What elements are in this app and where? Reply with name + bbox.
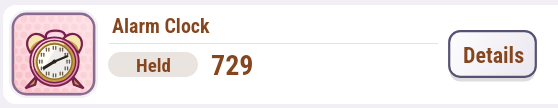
staticText: Held xyxy=(136,54,171,76)
other: Alarm Clock icon xyxy=(9,10,98,98)
button[interactable]: Held xyxy=(108,52,198,77)
button[interactable]: Details xyxy=(448,30,537,80)
staticText: Details xyxy=(463,43,525,69)
staticText: 729 xyxy=(211,49,254,82)
staticText: Alarm Clock xyxy=(112,14,210,37)
